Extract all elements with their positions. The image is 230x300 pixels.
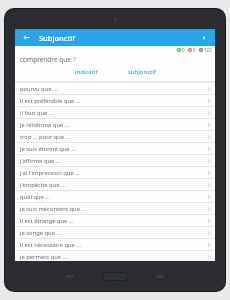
button[interactable]: je réitérone que ... bbox=[15, 119, 215, 130]
staticText: je suis mécontent que ... bbox=[20, 205, 207, 213]
button[interactable]: j'empêche que ... bbox=[15, 179, 215, 190]
staticText: Subjonctif bbox=[39, 33, 76, 43]
button[interactable]: je suis étonné que ... bbox=[15, 143, 215, 154]
button[interactable]: Back bbox=[156, 275, 164, 278]
staticText: j'empêche que ... bbox=[20, 181, 207, 189]
staticText: trop ... pour que ... bbox=[20, 133, 207, 141]
staticText: 0 bbox=[182, 47, 185, 53]
staticText: subjonctif bbox=[128, 68, 156, 76]
staticText: je réitérone que ... bbox=[20, 121, 207, 129]
button[interactable]: je permets que ... bbox=[15, 251, 215, 261]
button[interactable]: je suis mécontent que ... bbox=[15, 203, 215, 214]
staticText: j'affirme que ... bbox=[20, 157, 207, 165]
button[interactable]: il faut que ... bbox=[15, 107, 215, 118]
staticText: je suis étonné que ... bbox=[20, 145, 207, 153]
button[interactable]: il est étrange que ... bbox=[15, 215, 215, 226]
button[interactable]: Back bbox=[20, 31, 33, 44]
button[interactable]: j'affirme que ... bbox=[15, 155, 215, 166]
button[interactable]: trop ... pour que ... bbox=[15, 131, 215, 142]
button[interactable]: je songe que ... bbox=[15, 227, 215, 238]
staticText: il est nécessaire que ... bbox=[20, 241, 207, 249]
button[interactable]: indicatif bbox=[67, 67, 106, 77]
staticText: quel que ... bbox=[20, 193, 207, 201]
staticText: j'ai l'impression que ... bbox=[20, 169, 207, 177]
button[interactable]: j'ai l'impression que ... bbox=[15, 167, 215, 178]
button[interactable]: More options bbox=[197, 31, 210, 44]
button[interactable]: pourvu que ... bbox=[15, 83, 215, 94]
button[interactable]: subjonctif bbox=[120, 67, 164, 77]
button[interactable]: Home bbox=[102, 272, 128, 281]
button[interactable]: il est nécessaire que ... bbox=[15, 239, 215, 250]
staticText: il est préférable que ... bbox=[20, 97, 207, 105]
staticText: il est étrange que ... bbox=[20, 217, 207, 225]
staticText: il faut que ... bbox=[20, 109, 207, 117]
staticText: je permets que ... bbox=[20, 253, 207, 261]
staticText: ? bbox=[73, 55, 76, 64]
button[interactable]: Recent apps bbox=[66, 275, 74, 278]
staticText: 122 bbox=[204, 47, 212, 53]
staticText: comprendre que bbox=[20, 55, 71, 64]
staticText: 0 bbox=[193, 47, 196, 53]
staticText: pourvu que ... bbox=[20, 85, 207, 93]
staticText: je songe que ... bbox=[20, 229, 207, 237]
button[interactable]: il est préférable que ... bbox=[15, 95, 215, 106]
staticText: indicatif bbox=[75, 68, 98, 76]
button[interactable]: quel que ... bbox=[15, 191, 215, 202]
